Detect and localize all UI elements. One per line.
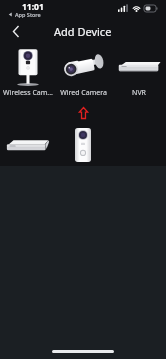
button[interactable]: Wireless Cam... [0, 46, 55, 98]
button[interactable]: Access Control [55, 124, 110, 166]
staticText: Wired Camera [60, 88, 107, 98]
button[interactable]: Back [6, 21, 26, 41]
staticText: Add Device [54, 24, 112, 39]
staticText: NVR [132, 88, 146, 98]
button[interactable]: Wired Camera [56, 46, 111, 98]
button[interactable]: DVR/XVR [0, 124, 55, 166]
button[interactable]: NVR [111, 46, 166, 98]
staticText: 11:01 [22, 1, 44, 13]
staticText: Wireless Cam... [3, 88, 53, 98]
staticText: App Store [15, 11, 41, 18]
